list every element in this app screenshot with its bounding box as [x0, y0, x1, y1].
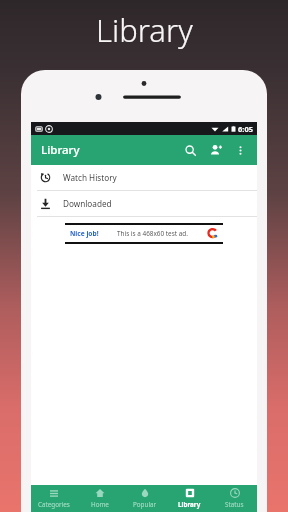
button[interactable]: Categories	[31, 485, 77, 512]
staticText: Downloaded	[63, 198, 112, 209]
staticText: Nice job!	[70, 229, 99, 238]
button[interactable]: Status	[212, 485, 257, 512]
button[interactable]: Search	[180, 140, 200, 160]
staticText: Watch History	[63, 172, 117, 183]
staticText: Library	[41, 142, 80, 158]
staticText: Library	[96, 9, 193, 51]
staticText: Home	[91, 500, 109, 509]
button[interactable]: Library	[167, 485, 212, 512]
other: Ad	[207, 228, 218, 239]
staticText: Popular	[133, 500, 157, 509]
button[interactable]: Add person	[206, 140, 226, 160]
staticText: Status	[225, 500, 244, 509]
staticText: 6:05	[238, 124, 253, 134]
staticText: Library	[178, 500, 201, 509]
button[interactable]: Nice job!	[65, 225, 223, 242]
button[interactable]: Watch History	[31, 165, 257, 190]
staticText: This is a 468x60 test ad.	[117, 229, 188, 238]
button[interactable]: Downloaded	[31, 191, 257, 216]
button[interactable]: Home	[77, 485, 122, 512]
button[interactable]: Popular	[122, 485, 167, 512]
staticText: Categories	[38, 500, 70, 509]
button[interactable]: More options	[230, 140, 250, 160]
